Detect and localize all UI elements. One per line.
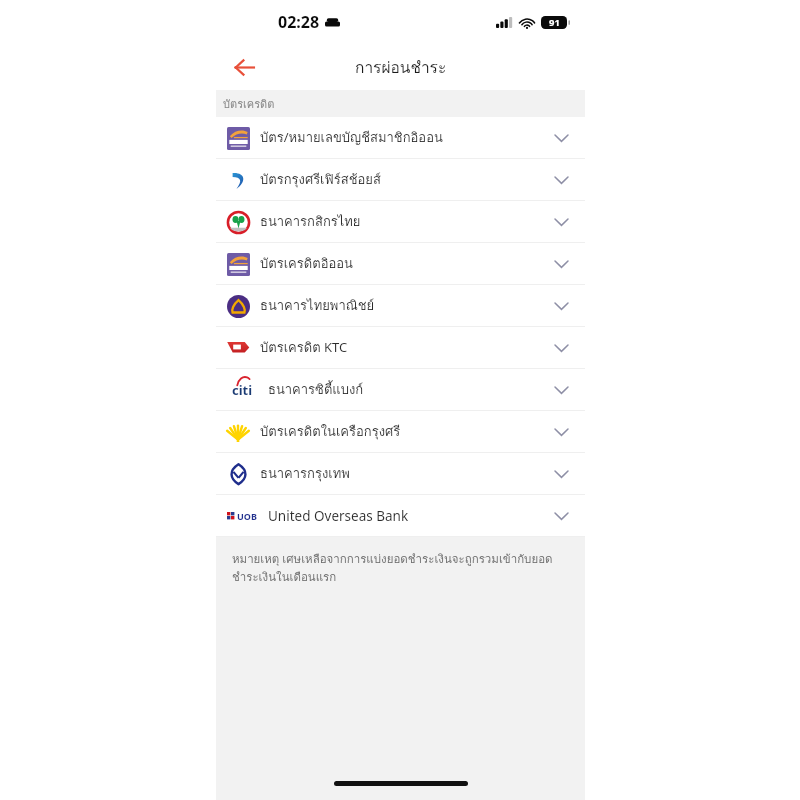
button[interactable]: บัตร/หมายเลขบัญชีสมาชิกอิออน [216,117,585,158]
staticText: บัตรเครดิตในเครือกรุงศรี [260,421,551,442]
button[interactable]: ธนาคารกสิกรไทย [216,201,585,242]
button[interactable]: ธนาคารกรุงเทพ [216,453,585,494]
button[interactable]: บัตรเครดิต KTC [216,327,585,368]
staticText: บัตรเครดิต KTC [260,337,551,358]
button[interactable]: UOB [216,495,585,536]
staticText: หมายเหตุ เศษเหลือจากการแบ่งยอดชำระเงินจะ… [232,550,553,586]
staticText: ธนาคารกรุงเทพ [260,463,551,484]
staticText: บัตร/หมายเลขบัญชีสมาชิกอิออน [260,127,551,148]
staticText: 02:28 [278,11,320,33]
staticText: 91 [549,16,560,29]
staticText: ธนาคารซิตี้แบงก์ [268,379,551,400]
button[interactable]: ธนาคารไทยพาณิชย์ [216,285,585,326]
button[interactable]: Back [224,47,264,87]
button[interactable]: บัตรเครดิตในเครือกรุงศรี [216,411,585,452]
staticText: บัตรเครดิตอิออน [260,253,551,274]
staticText: ธนาคารไทยพาณิชย์ [260,295,551,316]
staticText: การผ่อนชำระ [355,55,447,80]
staticText: citi [232,381,253,399]
button[interactable]: บัตรเครดิตอิออน [216,243,585,284]
button[interactable]: บัตรกรุงศรีเฟิร์สช้อยส์ [216,159,585,200]
staticText: United Overseas Bank [268,507,551,525]
staticText: UOB [237,510,257,522]
staticText: ธนาคารกสิกรไทย [260,211,551,232]
staticText: บัตรกรุงศรีเฟิร์สช้อยส์ [260,169,551,190]
button[interactable]: citi [216,369,585,410]
staticText: บัตรเครดิต [223,95,275,112]
